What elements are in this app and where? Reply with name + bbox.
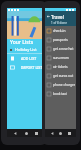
button[interactable]: get euros out xyxy=(45,71,76,80)
staticText: check-in luggage xyxy=(53,29,76,33)
staticText: get euros out xyxy=(53,74,74,78)
button[interactable]: Back xyxy=(51,132,54,135)
button[interactable]: Back xyxy=(14,132,17,135)
button[interactable]: passports xyxy=(45,35,76,44)
button[interactable]: book taxi xyxy=(45,89,76,98)
button[interactable]: ADD LIST xyxy=(7,54,45,63)
button[interactable]: Holiday List xyxy=(7,46,45,53)
staticText: Travel Checklist xyxy=(51,14,76,20)
button[interactable]: sun-cream xyxy=(45,53,76,62)
staticText: air tickets xyxy=(53,65,68,69)
button[interactable]: air tickets xyxy=(45,62,76,71)
staticText: ADD LIST xyxy=(21,56,37,61)
staticText: sun-cream xyxy=(53,56,69,60)
staticText: get a new hat xyxy=(53,47,74,51)
button[interactable]: phone charger xyxy=(45,80,76,89)
button[interactable]: Back xyxy=(46,14,51,19)
staticText: phone charger xyxy=(53,83,76,87)
staticText: Holiday List xyxy=(15,47,37,52)
staticText: 1 of 8 done xyxy=(51,21,67,25)
staticText: Your Lists xyxy=(10,39,34,46)
button[interactable]: check-in luggage xyxy=(45,26,76,35)
staticText: book taxi xyxy=(53,92,67,96)
button[interactable]: Home xyxy=(59,132,62,135)
button[interactable]: get a new hat xyxy=(45,44,76,53)
staticText: passports xyxy=(53,38,68,42)
staticText: IMPORT LIST xyxy=(21,65,43,70)
button[interactable]: Home xyxy=(25,132,28,135)
button[interactable]: IMPORT LIST xyxy=(7,63,45,72)
